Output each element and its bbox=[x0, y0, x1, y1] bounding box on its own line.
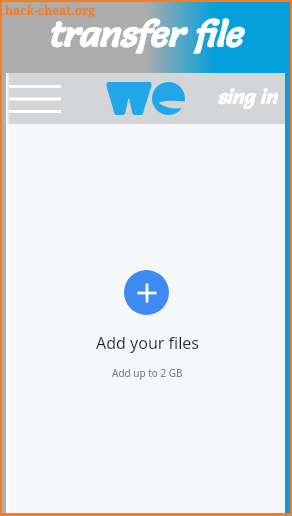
button[interactable]: Add your files bbox=[124, 270, 169, 315]
button[interactable]: sing in bbox=[217, 85, 277, 110]
staticText: hack-cheat.org bbox=[5, 2, 96, 18]
button[interactable]: Menu bbox=[5, 76, 65, 122]
staticText: Add your files bbox=[96, 332, 200, 354]
staticText: Add up to 2 GB bbox=[112, 366, 183, 380]
staticText: transfer file bbox=[47, 12, 242, 56]
